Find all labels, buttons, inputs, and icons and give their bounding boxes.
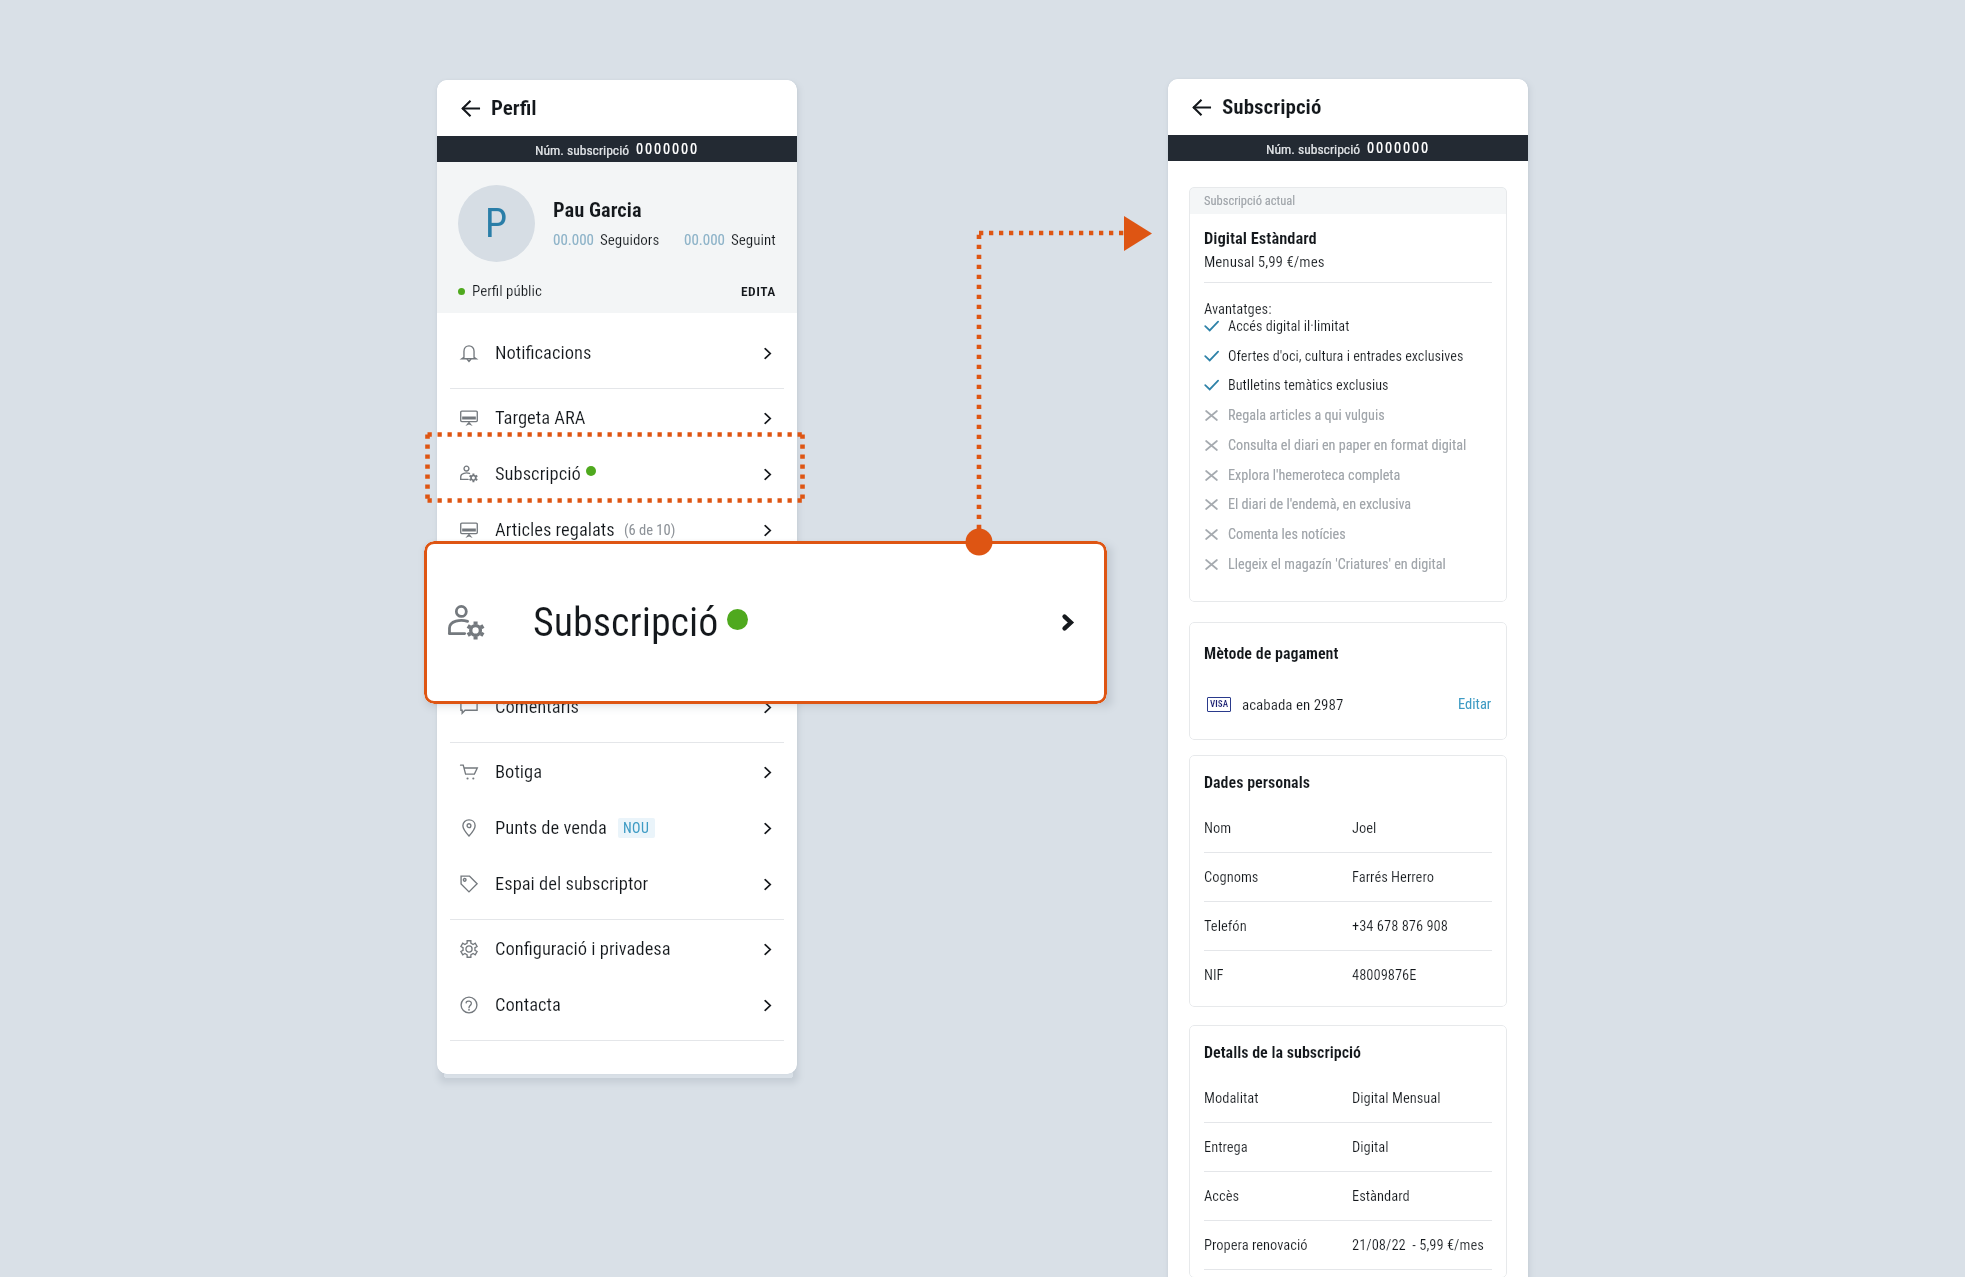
staticText: El diari de l'endemà, en exclusiva [1228,496,1412,513]
staticText: 48009876E [1352,967,1417,984]
staticText: Detalls de la subscripció [1204,1043,1362,1062]
staticText: Seguint [731,231,776,249]
staticText: Butlletins temàtics exclusius [1228,377,1389,394]
staticText: Avantatges: [1204,301,1272,318]
staticText: Explora l'hemeroteca completa [1228,467,1401,484]
staticText: Seguidors [600,231,660,249]
staticText: Botiga [495,761,543,783]
staticText: Notificacions [495,342,592,364]
staticText: 00.000 [553,231,594,249]
staticText: Regala articles a qui vulguis [1228,407,1385,424]
staticText: Comentaris [495,696,579,718]
staticText: Accés digital il·limitat [1228,318,1350,335]
button[interactable]: Comentaris [437,679,797,735]
staticText: Llegeix el magazín 'Criatures' en digita… [1228,556,1446,573]
staticText: 0000000 [1367,140,1431,157]
staticText: Estàndard [1352,1188,1410,1205]
staticText: Entrega [1204,1139,1248,1156]
staticText: Subscripció actual [1204,193,1296,208]
staticText: Editar [1458,696,1492,713]
staticText: Perfil públic [472,282,542,300]
staticText: VISA [1210,699,1229,710]
button[interactable]: Targeta ARA [437,390,797,446]
staticText: Targeta ARA [495,407,586,429]
staticText: Espai del subscriptor [495,873,649,895]
staticText: Núm. subscripció [535,142,630,158]
staticText: Digital [1352,1139,1389,1156]
button[interactable]: Editar [1455,692,1495,717]
staticText: Subscripció [533,599,719,646]
staticText: Punts de venda [495,817,607,839]
staticText: Menusal 5,99 €/mes [1204,253,1325,271]
button[interactable]: Articles regalats [437,502,797,558]
staticText: Telefón [1204,918,1247,935]
staticText: Articles regalats [495,519,615,541]
staticText: Perfil [491,96,537,121]
staticText: 00.000 [684,231,725,249]
staticText: NIF [1204,967,1224,984]
button[interactable]: EDITA [738,279,779,303]
button[interactable]: Back [1188,94,1214,120]
button[interactable]: Back [457,95,483,121]
button[interactable]: Subscripció [424,541,1107,704]
staticText: Subscripció [1222,95,1322,120]
staticText: Subscripció [495,463,581,485]
staticText: 0000000 [636,141,700,158]
staticText: Accès [1204,1188,1240,1205]
staticText: Cognoms [1204,869,1259,886]
staticText: NOU [623,820,650,836]
staticText: Dades personals [1204,773,1310,792]
staticText: Digital Estàndard [1204,229,1317,248]
staticText: Consulta el diari en paper en format dig… [1228,437,1467,454]
button[interactable]: Botiga [437,744,797,800]
button[interactable]: Espai del subscriptor [437,856,797,912]
staticText: Mètode de pagament [1204,644,1339,663]
staticText: acabada en 2987 [1242,696,1344,714]
staticText: Nom [1204,820,1232,837]
staticText: Modalitat [1204,1090,1259,1107]
staticText: Propera renovació [1204,1237,1308,1254]
staticText: (6 de 10) [624,522,676,539]
button[interactable]: Contacta [437,977,797,1033]
staticText: EDITA [741,283,776,299]
button[interactable]: Els meus temes [437,623,797,679]
staticText: Farrés Herrero [1352,869,1434,886]
button[interactable]: Notificacions [437,325,797,381]
staticText: Núm. subscripció [1266,141,1361,157]
staticText: 21/08/22 - 5,99 €/mes [1352,1237,1484,1254]
staticText: Pau Garcia [553,198,642,222]
staticText: +34 678 876 908 [1352,918,1448,935]
staticText: Joel [1352,820,1377,837]
staticText: Contacta [495,994,561,1016]
staticText: Comenta les notícies [1228,526,1346,543]
staticText: Configuració i privadesa [495,938,671,960]
button[interactable]: Articles guardats [437,558,797,614]
button[interactable]: Punts de venda [437,800,797,856]
staticText: Digital Mensual [1352,1090,1441,1107]
staticText: Ofertes d'oci, cultura i entrades exclus… [1228,348,1464,365]
button[interactable]: Configuració i privadesa [437,921,797,977]
button[interactable]: Subscripció [437,446,797,502]
staticText: P [485,200,508,247]
